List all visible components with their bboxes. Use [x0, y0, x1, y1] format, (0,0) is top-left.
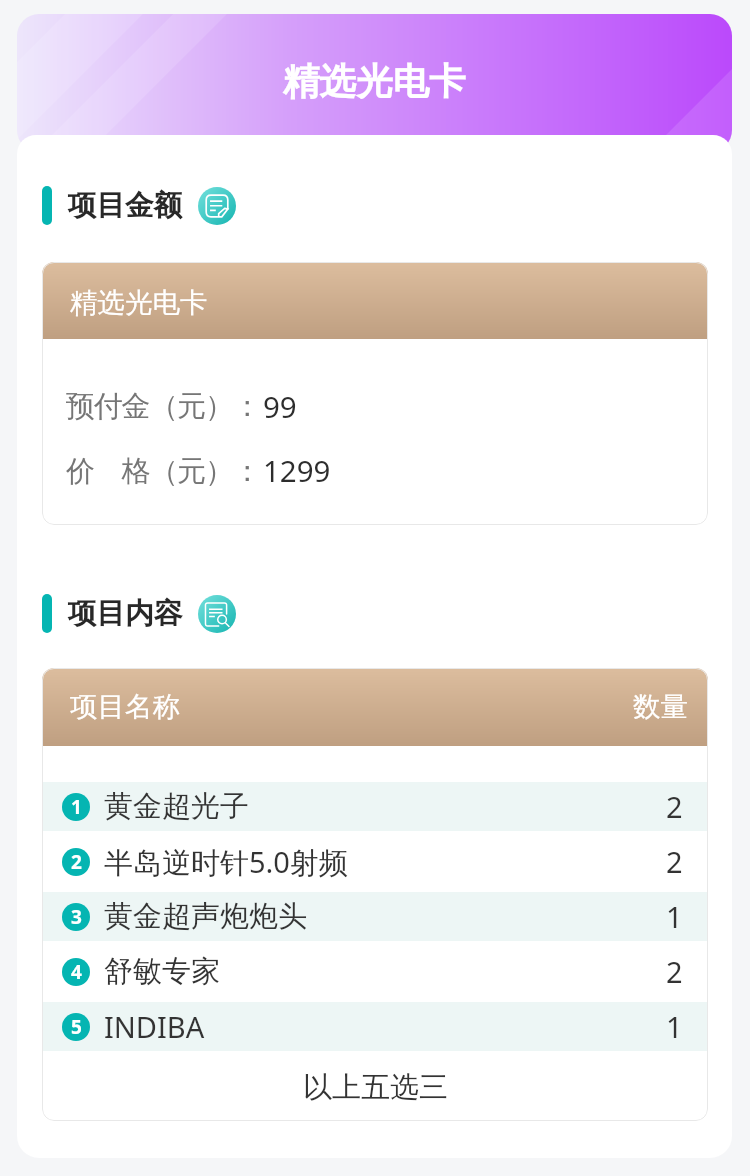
other: Project amount: [198, 187, 236, 225]
button[interactable]: 5: [42, 1002, 708, 1051]
staticText: 1: [666, 1007, 683, 1046]
staticText: 以上五选三: [303, 1069, 448, 1106]
staticText: 项目金额: [68, 188, 182, 224]
staticText: 项目内容: [68, 596, 182, 632]
other: Project contents: [198, 595, 236, 633]
button[interactable]: 1: [42, 782, 708, 831]
staticText: INDIBA: [104, 1007, 205, 1046]
staticText: 项目名称: [70, 690, 180, 725]
staticText: 1299: [263, 450, 331, 490]
staticText: 2: [666, 952, 683, 991]
staticText: 黄金超声炮炮头: [104, 898, 307, 935]
staticText: 黄金超光子: [104, 788, 249, 825]
staticText: 半岛逆时针5.0射频: [104, 842, 348, 882]
button[interactable]: 3: [42, 892, 708, 941]
staticText: 99: [263, 386, 297, 426]
staticText: 2: [666, 787, 683, 826]
button[interactable]: 2: [42, 837, 708, 886]
staticText: 预付金（元）：: [66, 388, 261, 425]
staticText: 5: [71, 1014, 82, 1040]
staticText: 3: [71, 904, 82, 930]
staticText: 2: [666, 842, 683, 881]
staticText: 价 格（元）：: [66, 450, 261, 490]
staticText: 精选光电卡: [70, 286, 208, 321]
staticText: 4: [71, 959, 82, 985]
button[interactable]: 4: [42, 947, 708, 996]
staticText: 1: [71, 794, 82, 820]
staticText: 精选光电卡: [283, 59, 466, 105]
staticText: 2: [71, 849, 82, 875]
staticText: 舒敏专家: [104, 953, 220, 990]
staticText: 1: [666, 897, 683, 936]
staticText: 数量: [633, 690, 688, 725]
